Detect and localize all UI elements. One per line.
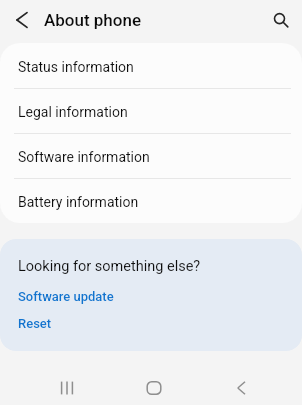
button[interactable]: Software update bbox=[0, 287, 302, 306]
button[interactable]: Status information bbox=[0, 43, 302, 88]
staticText: Battery information bbox=[18, 194, 139, 210]
button[interactable]: Reset bbox=[0, 314, 302, 333]
button[interactable]: Home bbox=[110, 370, 197, 405]
staticText: Software update bbox=[18, 289, 114, 304]
button[interactable]: Back bbox=[197, 370, 284, 405]
staticText: Status information bbox=[18, 59, 134, 75]
button[interactable]: Legal information bbox=[0, 88, 302, 133]
button[interactable]: Battery information bbox=[0, 178, 302, 223]
button[interactable]: Software information bbox=[0, 133, 302, 178]
button[interactable]: Search bbox=[268, 8, 292, 32]
staticText: Software information bbox=[18, 149, 150, 165]
staticText: About phone bbox=[44, 10, 142, 30]
button[interactable]: Recent apps bbox=[24, 370, 110, 405]
staticText: Reset bbox=[18, 316, 52, 331]
staticText: Looking for something else? bbox=[18, 258, 201, 275]
staticText: Legal information bbox=[18, 104, 128, 120]
button[interactable]: Navigate up bbox=[10, 8, 34, 32]
